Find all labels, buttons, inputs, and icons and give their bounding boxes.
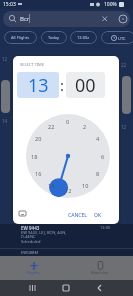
staticText: 00: [75, 73, 96, 98]
staticText: 12: [121, 124, 127, 130]
button[interactable]: Bcn: [3, 11, 130, 27]
staticText: 13: [28, 73, 49, 98]
staticText: 15:03: [3, 1, 16, 8]
button[interactable]: All Flights: [4, 31, 37, 44]
staticText: D-AENC: [21, 234, 36, 239]
button[interactable]: [19, 211, 26, 217]
staticText: EW 9443, LEJ, BCN, A3N,: [21, 230, 67, 235]
staticText: 20: [35, 135, 42, 142]
staticText: 22: [121, 62, 127, 68]
button[interactable]: UTC: [101, 31, 133, 44]
staticText: EW 9443: [21, 225, 40, 231]
staticText: 8: [96, 170, 100, 177]
staticText: 4: [96, 135, 100, 142]
staticText: UTC: [118, 36, 126, 41]
staticText: OK: [94, 212, 102, 219]
staticText: 12: [2, 56, 8, 62]
button[interactable]: Watchlist: [66, 256, 133, 280]
button[interactable]: 00: [66, 72, 105, 98]
button[interactable]: 13: [17, 72, 59, 98]
button[interactable]: Today: [41, 31, 67, 44]
staticText: 18: [31, 153, 38, 160]
staticText: 14: [2, 118, 8, 124]
staticText: 10: [82, 182, 89, 189]
staticText: 2: [83, 123, 87, 130]
button[interactable]: Flights: [0, 256, 66, 280]
staticText: 6: [101, 153, 105, 160]
button[interactable]: CANCEL: [63, 210, 91, 220]
staticText: Flights: [27, 270, 40, 275]
staticText: :: [60, 75, 65, 95]
staticText: EWG88M: [21, 250, 39, 255]
button[interactable]: OK: [89, 210, 106, 220]
staticText: CANCEL: [68, 212, 87, 219]
staticText: Watchlist: [91, 270, 109, 275]
staticText: 16: [35, 170, 42, 177]
staticText: All Flights: [11, 35, 30, 40]
staticText: 0: [66, 118, 70, 125]
staticText: Scheduled: [21, 239, 41, 244]
staticText: 13:00z: [77, 35, 90, 40]
staticText: 22: [48, 123, 55, 130]
staticText: Bcn: [20, 15, 31, 23]
staticText: 13:05: [100, 225, 111, 230]
staticText: 12: [65, 187, 72, 194]
staticText: Today: [48, 35, 60, 40]
staticText: 100%: [104, 1, 117, 8]
staticText: 14: [48, 182, 55, 189]
staticText: SELECT TIME: [20, 62, 44, 67]
button[interactable]: 13:00z: [70, 31, 97, 44]
